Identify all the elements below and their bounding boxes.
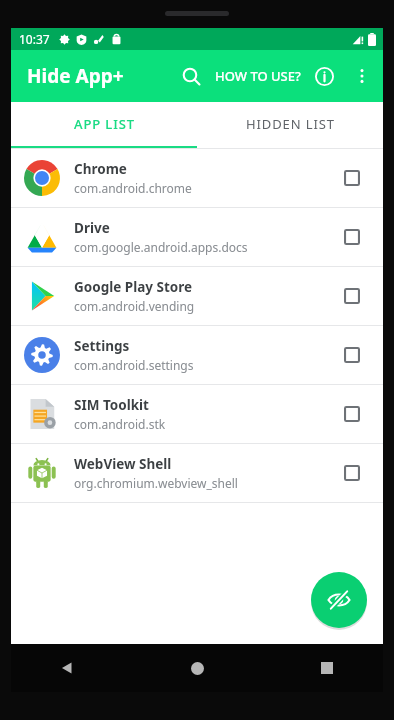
staticText: 10:37 bbox=[19, 31, 50, 47]
button[interactable]: HIDDEN LIST bbox=[197, 102, 383, 146]
staticText: com.android.chrome bbox=[74, 180, 192, 196]
button[interactable]: Select Settings bbox=[337, 340, 367, 370]
staticText: Chrome bbox=[74, 160, 127, 178]
staticText: com.android.stk bbox=[74, 416, 166, 432]
button[interactable]: Hide selected apps bbox=[311, 572, 367, 628]
button[interactable]: Select Drive bbox=[337, 222, 367, 252]
staticText: HOW TO USE? bbox=[215, 67, 301, 85]
staticText: HIDDEN LIST bbox=[246, 115, 335, 133]
button[interactable]: Select Chrome bbox=[337, 163, 367, 193]
staticText: APP LIST bbox=[74, 115, 135, 133]
button[interactable]: More options bbox=[343, 57, 381, 95]
staticText: Google Play Store bbox=[74, 278, 193, 296]
button[interactable]: Search bbox=[171, 56, 211, 96]
staticText: com.google.android.apps.docs bbox=[74, 239, 248, 255]
button[interactable]: Home bbox=[177, 648, 217, 688]
button[interactable]: Drive bbox=[11, 208, 383, 266]
button[interactable]: Recent apps bbox=[307, 648, 347, 688]
button[interactable]: APP LIST bbox=[11, 102, 197, 146]
button[interactable]: Select Google Play Store bbox=[337, 281, 367, 311]
button[interactable]: HOW TO USE? bbox=[211, 61, 305, 91]
button[interactable]: WebView Shell bbox=[11, 444, 383, 502]
staticText: com.android.settings bbox=[74, 357, 194, 373]
button[interactable]: SIM Toolkit bbox=[11, 385, 383, 443]
staticText: SIM Toolkit bbox=[74, 396, 149, 414]
button[interactable]: Back bbox=[47, 648, 87, 688]
button[interactable]: Settings bbox=[11, 326, 383, 384]
button[interactable]: Chrome bbox=[11, 149, 383, 207]
button[interactable]: Info bbox=[305, 57, 343, 95]
staticText: Drive bbox=[74, 219, 110, 237]
staticText: WebView Shell bbox=[74, 455, 172, 473]
button[interactable]: Select SIM Toolkit bbox=[337, 399, 367, 429]
staticText: Settings bbox=[74, 337, 130, 355]
button[interactable]: Select WebView Shell bbox=[337, 458, 367, 488]
button[interactable]: Google Play Store bbox=[11, 267, 383, 325]
staticText: Hide App+ bbox=[27, 63, 124, 89]
staticText: org.chromium.webview_shell bbox=[74, 475, 238, 491]
staticText: com.android.vending bbox=[74, 298, 195, 314]
